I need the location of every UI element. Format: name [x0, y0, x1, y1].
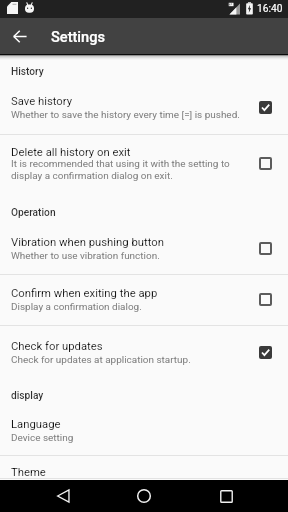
staticText: display [11, 390, 44, 402]
staticText: Check for updates [11, 340, 103, 352]
button[interactable]: Back [47, 480, 79, 512]
staticText: Operation [11, 207, 56, 219]
button[interactable]: Confirm when exiting the app [0, 287, 288, 313]
staticText: Whether to save the history every time [… [11, 109, 240, 121]
button[interactable]: Check for updates [0, 340, 288, 366]
staticText: Whether to use vibration function. [11, 250, 160, 262]
button[interactable]: Vibration when pushing button [0, 236, 288, 262]
staticText: Vibration when pushing button [11, 236, 164, 248]
staticText: Settings [51, 28, 105, 45]
staticText: Theme [11, 466, 46, 478]
staticText: History [11, 66, 44, 78]
button[interactable]: Theme [0, 466, 288, 478]
staticText: display a confirmation dialog on exit. [11, 170, 173, 182]
staticText: Language [11, 418, 61, 430]
staticText: Delete all history on exit [11, 146, 131, 158]
staticText: Check for updates at application startup… [11, 354, 191, 366]
button[interactable]: Home [128, 480, 160, 512]
staticText: Save history [11, 95, 73, 107]
button[interactable]: Back [6, 22, 34, 50]
button[interactable]: Save history [0, 95, 288, 121]
button[interactable]: Language [0, 418, 288, 444]
staticText: It is recommended that using it with the… [11, 158, 230, 170]
staticText: Device setting [11, 432, 74, 444]
staticText: Confirm when exiting the app [11, 287, 158, 299]
staticText: 16:40 [257, 3, 283, 15]
staticText: Display a confirmation dialog. [11, 301, 142, 313]
button[interactable]: Delete all history on exit [0, 146, 288, 182]
button[interactable]: Recent apps [210, 480, 242, 512]
